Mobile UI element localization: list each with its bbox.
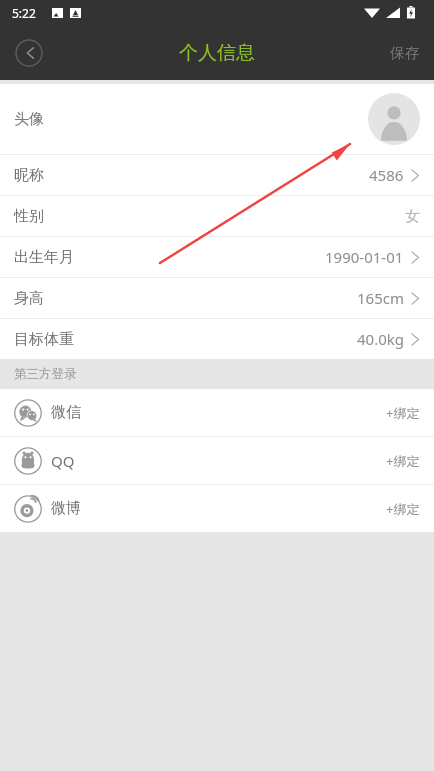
- button[interactable]: 昵称: [0, 155, 434, 195]
- button[interactable]: 性别: [0, 196, 434, 236]
- staticText: 1990-01-01: [325, 247, 404, 267]
- staticText: +绑定: [386, 500, 420, 518]
- staticText: 165cm: [357, 288, 404, 308]
- staticText: 5:22: [12, 5, 36, 21]
- button[interactable]: 出生年月: [0, 237, 434, 277]
- button[interactable]: Back: [14, 38, 44, 68]
- button[interactable]: 头像: [0, 84, 434, 154]
- staticText: 微信: [51, 403, 81, 422]
- staticText: QQ: [51, 451, 75, 471]
- staticText: +绑定: [386, 452, 420, 470]
- staticText: 目标体重: [14, 330, 74, 349]
- staticText: 出生年月: [14, 248, 74, 267]
- staticText: 第三方登录: [14, 366, 77, 382]
- button[interactable]: 微信: [0, 389, 434, 436]
- staticText: 身高: [14, 289, 44, 308]
- staticText: 4586: [369, 165, 404, 185]
- staticText: 微博: [51, 499, 81, 518]
- button[interactable]: 身高: [0, 278, 434, 318]
- staticText: 昵称: [14, 166, 44, 185]
- staticText: 性别: [14, 207, 44, 226]
- button[interactable]: 微博: [0, 485, 434, 532]
- staticText: 女: [405, 207, 420, 226]
- button[interactable]: 保存: [376, 26, 434, 80]
- button[interactable]: 目标体重: [0, 319, 434, 359]
- staticText: 40.0kg: [357, 329, 404, 349]
- staticText: 保存: [390, 44, 420, 63]
- button[interactable]: QQ: [0, 437, 434, 484]
- staticText: 个人信息: [179, 41, 255, 65]
- staticText: 头像: [14, 110, 44, 129]
- staticText: +绑定: [386, 404, 420, 422]
